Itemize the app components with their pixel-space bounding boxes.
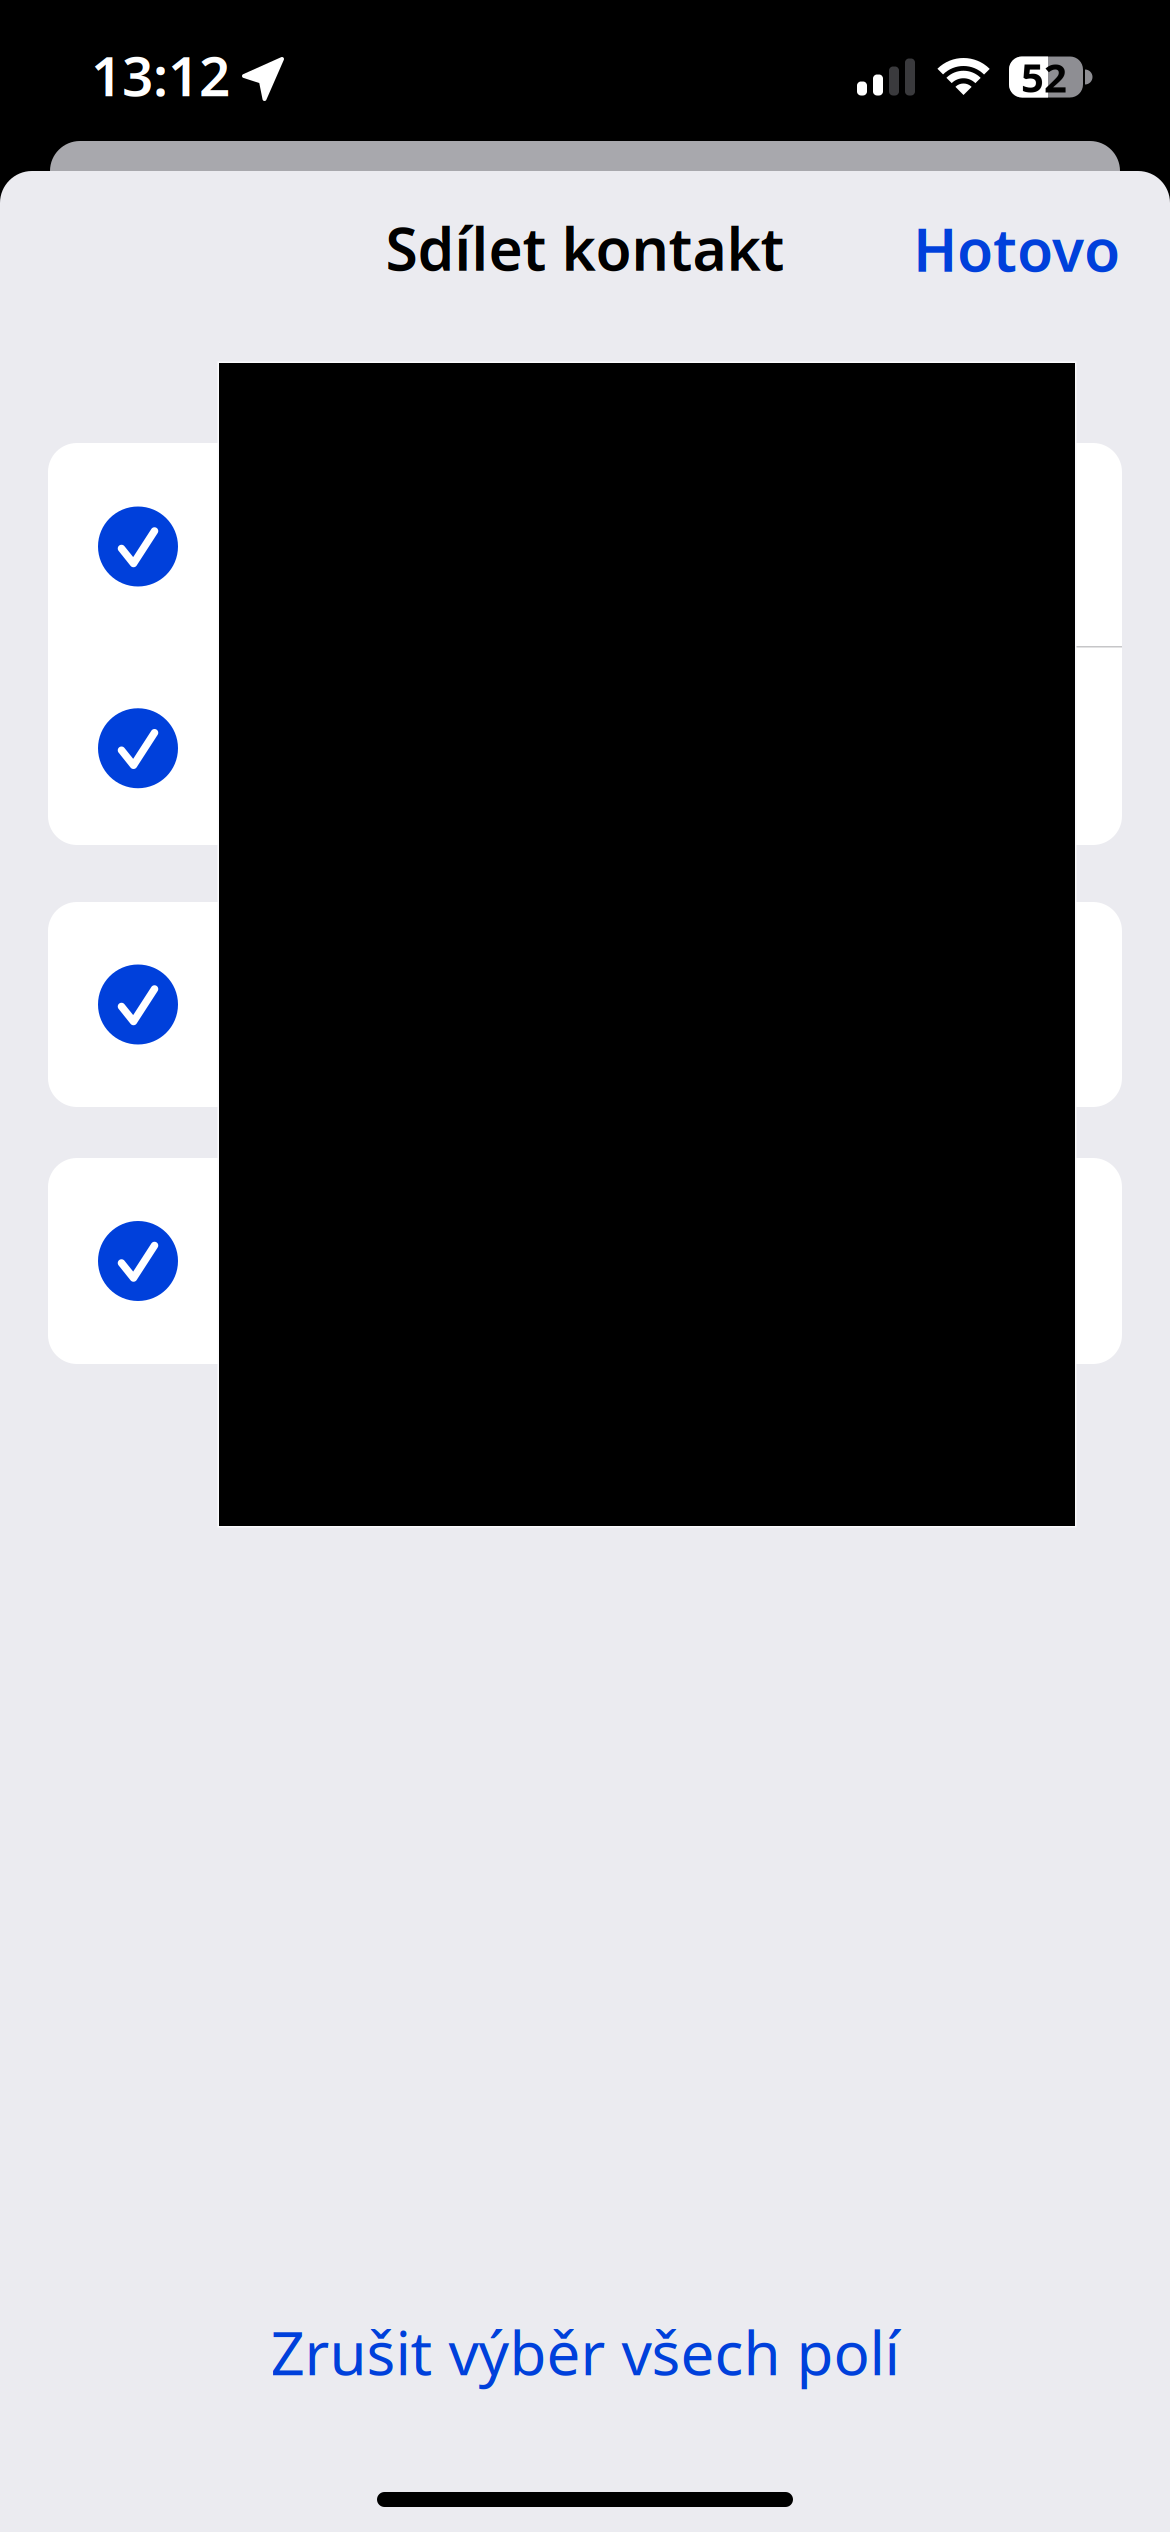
staticText: Zrušit výběr všech polí	[270, 2312, 899, 2392]
button[interactable]: Hotovo	[895, 201, 1138, 297]
staticText: Sdílet kontakt	[385, 209, 784, 287]
button[interactable]: Zrušit výběr všech polí	[0, 2297, 1170, 2407]
button[interactable]: Vybrané pole kontaktu	[48, 443, 1122, 646]
button[interactable]: Vybrané pole kontaktu	[48, 647, 1122, 845]
staticText: Hotovo	[913, 210, 1120, 288]
staticText: 52	[1021, 50, 1067, 103]
staticText: 13:12	[91, 39, 230, 111]
button[interactable]: Vybrané pole kontaktu	[48, 902, 1122, 1107]
button[interactable]: Vybrané pole kontaktu	[48, 1158, 1122, 1364]
